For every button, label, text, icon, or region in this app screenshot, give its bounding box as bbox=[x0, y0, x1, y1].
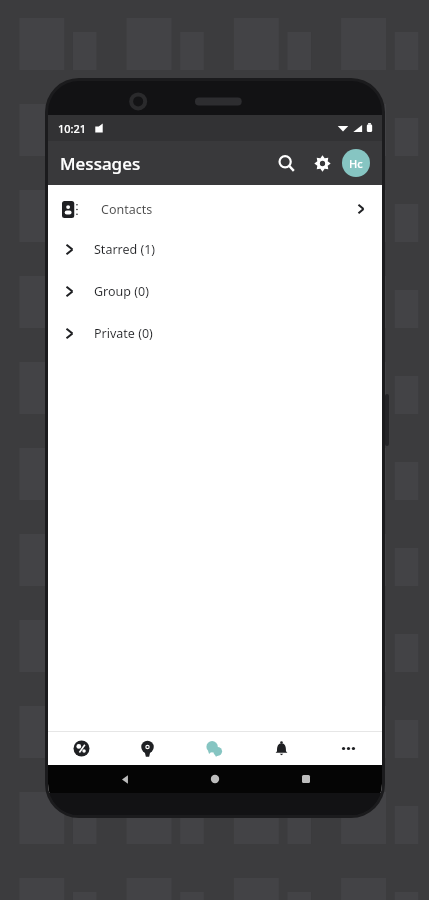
button[interactable]: More bbox=[315, 731, 382, 765]
staticText: 10:21 bbox=[58, 121, 87, 136]
staticText: Contacts bbox=[101, 201, 153, 218]
staticText: Group (0) bbox=[94, 283, 149, 300]
staticText: Starred (1) bbox=[94, 241, 156, 258]
button[interactable]: Notifications bbox=[248, 731, 315, 765]
staticText: Messages bbox=[60, 152, 141, 175]
button[interactable]: Starred (1) bbox=[48, 228, 382, 270]
button[interactable]: Search bbox=[270, 147, 302, 179]
button[interactable]: Contacts bbox=[48, 190, 382, 228]
button[interactable]: Private (0) bbox=[48, 312, 382, 354]
staticText: Private (0) bbox=[94, 325, 153, 342]
button[interactable]: Back bbox=[111, 765, 139, 793]
button[interactable]: Recents bbox=[292, 765, 320, 793]
button[interactable]: Ideas bbox=[114, 731, 181, 765]
button[interactable]: Explore bbox=[48, 731, 114, 765]
button[interactable]: Hc bbox=[342, 149, 370, 177]
button[interactable]: Messages bbox=[181, 731, 248, 765]
button[interactable]: Group (0) bbox=[48, 270, 382, 312]
staticText: Hc bbox=[349, 156, 363, 171]
button[interactable]: Settings bbox=[306, 147, 338, 179]
button[interactable]: Home bbox=[201, 765, 229, 793]
